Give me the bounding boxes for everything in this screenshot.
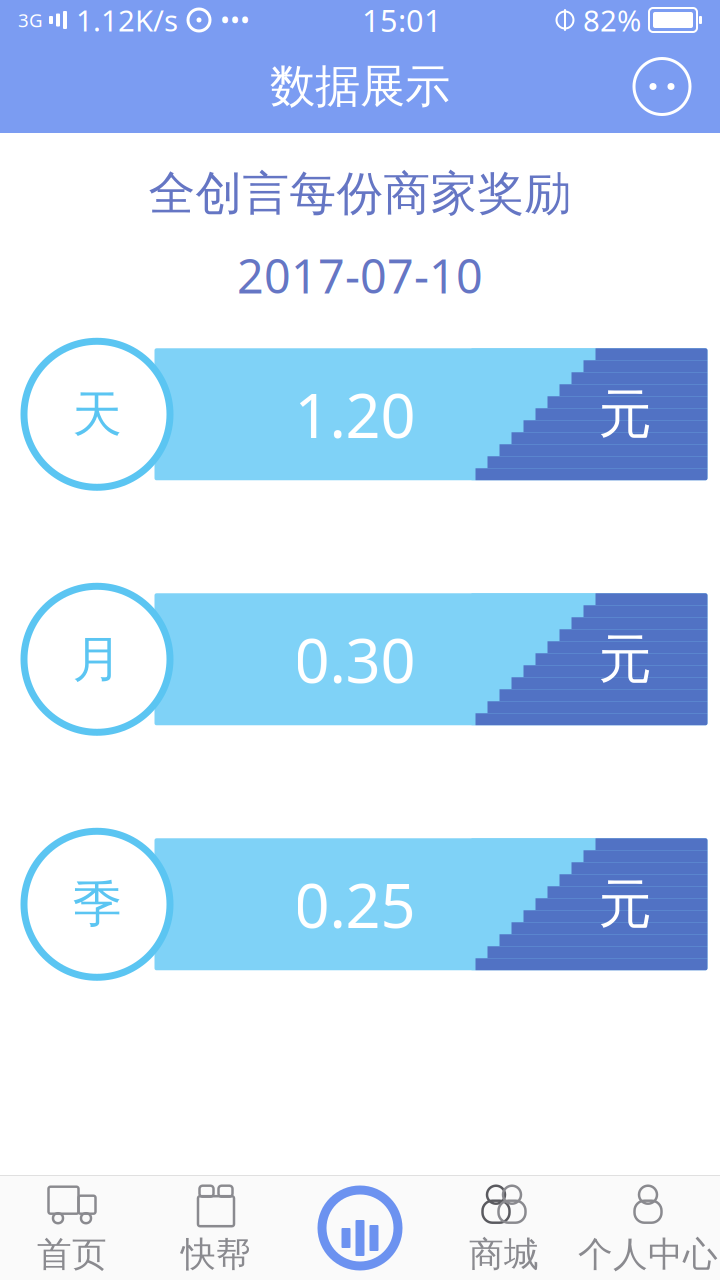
- staticText: 0.25: [294, 864, 415, 945]
- staticText: 1.12K/s: [76, 0, 178, 39]
- staticText: •••: [220, 2, 250, 38]
- button[interactable]: 个人中心: [576, 1176, 720, 1280]
- button[interactable]: 元: [0, 579, 720, 739]
- staticText: 季: [72, 874, 121, 935]
- staticText: 1.20: [294, 374, 415, 455]
- staticText: 15:01: [362, 0, 442, 40]
- staticText: 个人中心: [578, 1233, 718, 1276]
- staticText: 2017-07-10: [237, 244, 483, 306]
- staticText: 82%: [583, 0, 641, 39]
- button[interactable]: 数据展示: [288, 1176, 432, 1280]
- staticText: 元: [598, 626, 651, 692]
- button[interactable]: 快帮: [144, 1176, 288, 1280]
- button[interactable]: Messages: [624, 48, 700, 124]
- button[interactable]: 首页: [0, 1176, 144, 1280]
- staticText: 商城: [469, 1233, 539, 1276]
- staticText: 天: [72, 384, 121, 445]
- staticText: 月: [72, 629, 121, 690]
- button[interactable]: 元: [0, 824, 720, 984]
- staticText: 元: [598, 381, 651, 447]
- button[interactable]: 元: [0, 334, 720, 494]
- button[interactable]: 商城: [432, 1176, 576, 1280]
- staticText: 数据展示: [270, 59, 450, 114]
- staticText: 首页: [37, 1233, 107, 1276]
- staticText: 全创言每份商家奖励: [148, 165, 571, 222]
- staticText: 快帮: [181, 1233, 251, 1276]
- staticText: 0.30: [294, 619, 415, 700]
- staticText: 元: [598, 871, 651, 937]
- staticText: 3G: [18, 8, 43, 32]
